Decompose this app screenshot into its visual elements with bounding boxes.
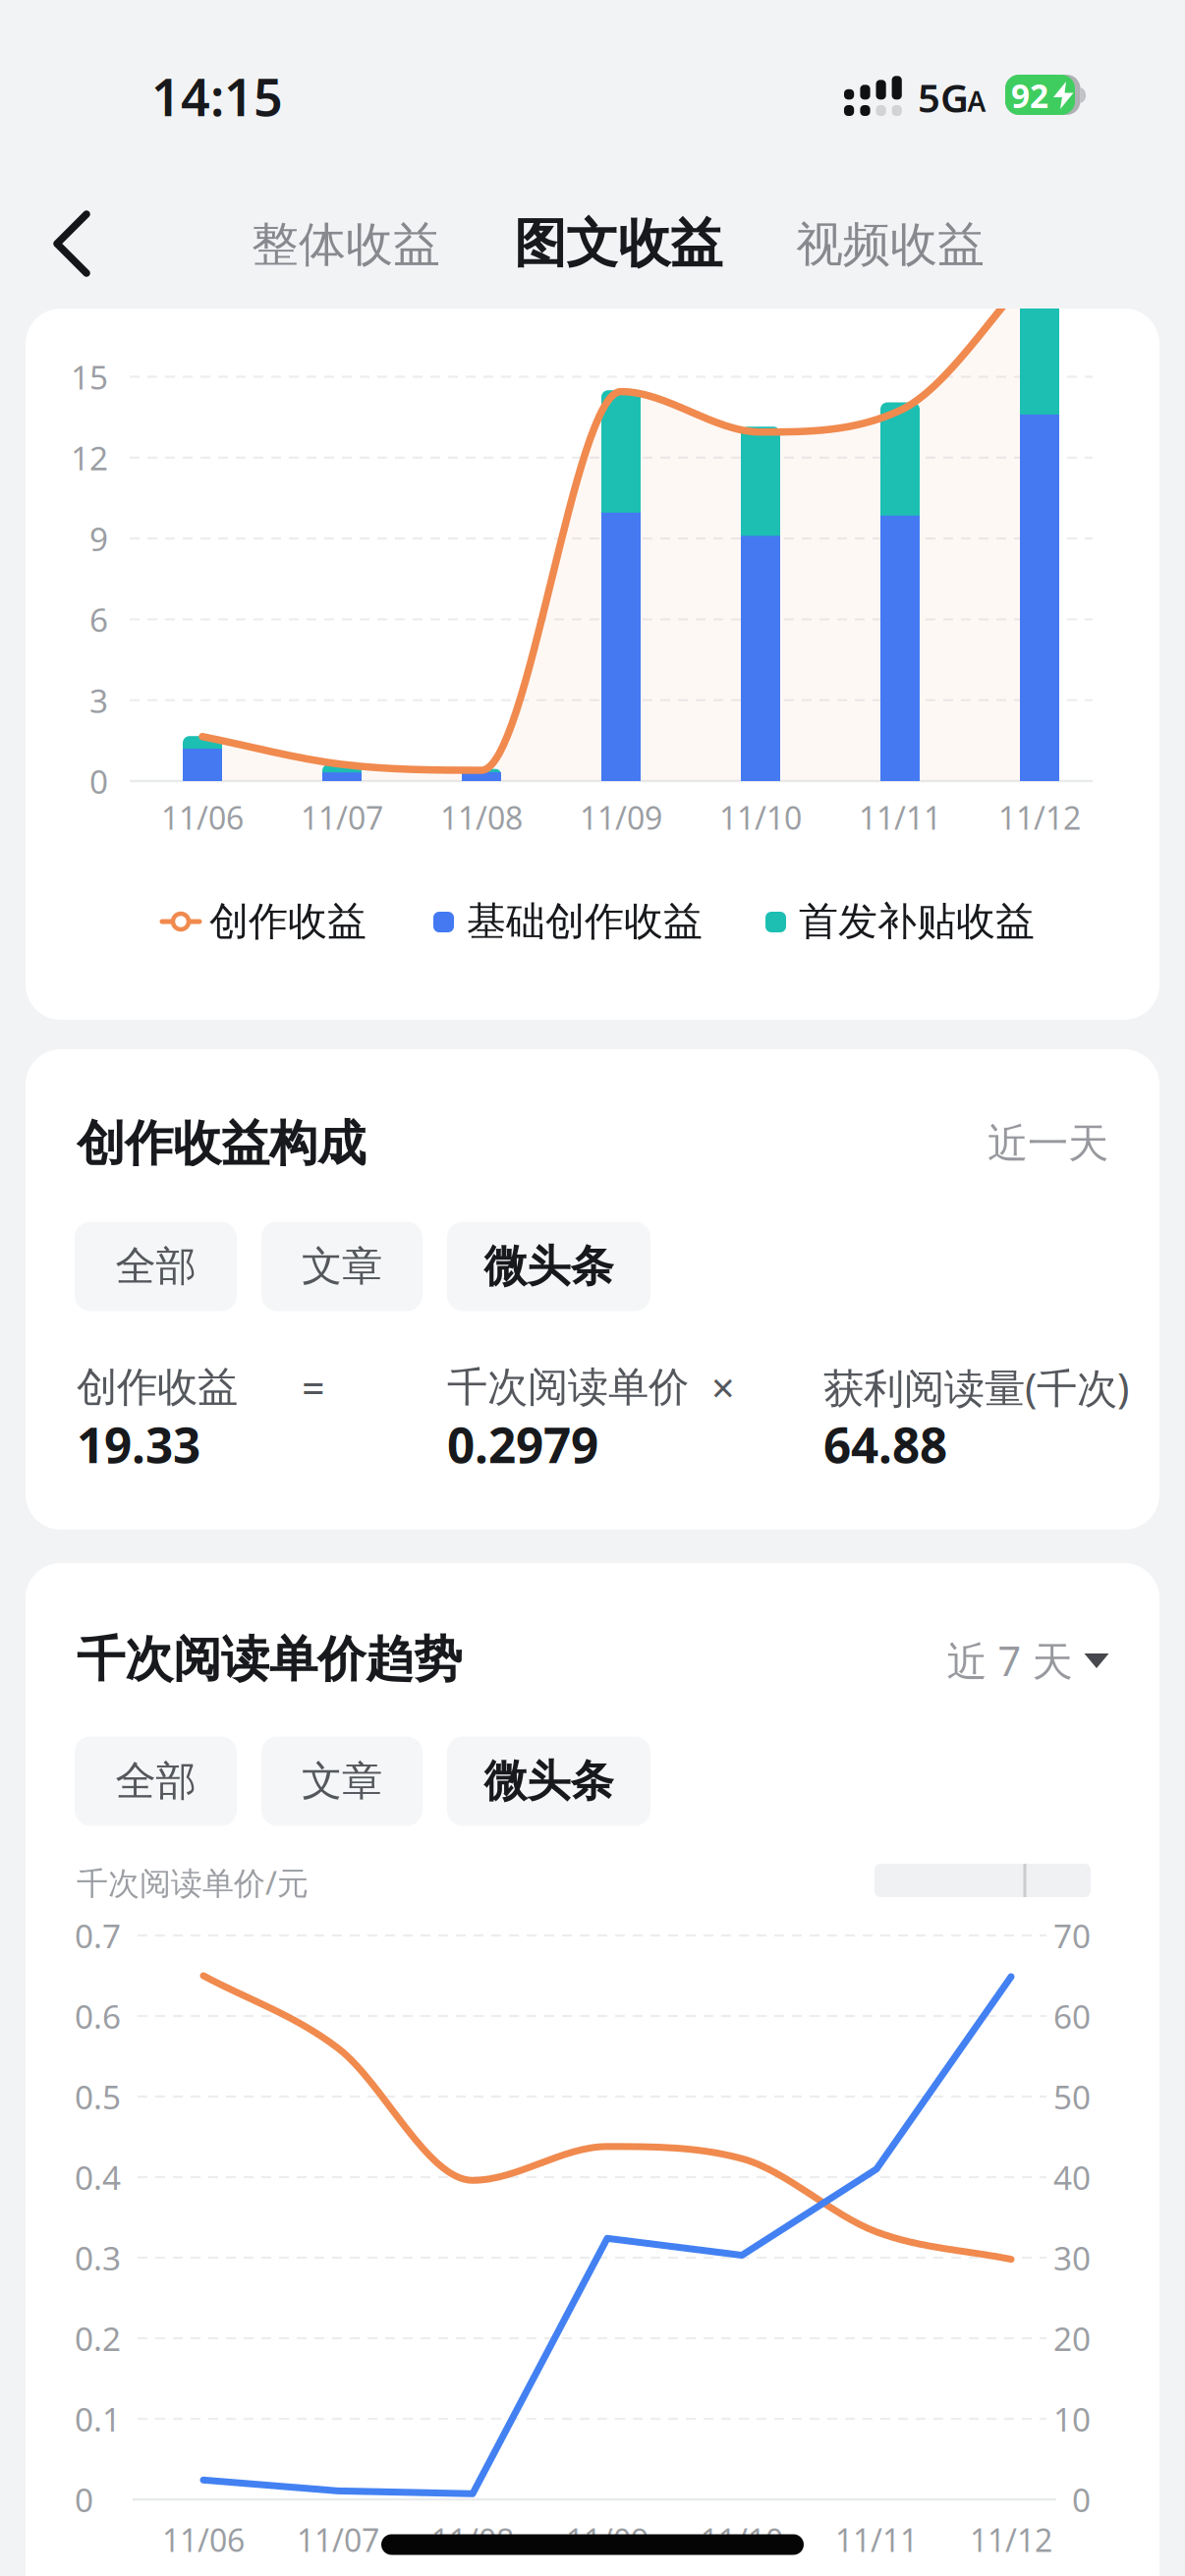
button[interactable]: 近 7 天	[947, 1633, 1109, 1687]
staticText: 千次阅读单价/元	[77, 1862, 309, 1903]
button[interactable]: 整体收益	[252, 216, 440, 274]
staticText: 整体收益	[252, 216, 440, 274]
staticText: 11/11	[835, 2519, 918, 2561]
staticText: 近一天	[987, 1119, 1108, 1169]
staticText: 千次阅读单价趋势	[77, 1630, 462, 1689]
staticText: 微头条	[484, 1240, 614, 1293]
button[interactable]: 文章	[261, 1736, 423, 1826]
staticText: 60	[1053, 1994, 1091, 2038]
staticText: 40	[1053, 2155, 1091, 2199]
staticText: 12	[71, 436, 108, 479]
staticText: 文章	[302, 1241, 382, 1291]
button[interactable]: 微头条	[447, 1736, 650, 1826]
staticText: 10	[1053, 2397, 1091, 2441]
staticText: 0.3	[75, 2236, 121, 2279]
staticText: 9	[89, 517, 108, 560]
staticText: 0.5	[75, 2075, 121, 2118]
staticText: 20	[1053, 2317, 1091, 2360]
staticText: 0.1	[75, 2397, 121, 2441]
staticText: 千次阅读单价	[447, 1362, 689, 1412]
staticText: 64.88	[823, 1412, 947, 1476]
staticText: 首发补贴收益	[799, 897, 1035, 946]
button[interactable]: 文章	[261, 1222, 423, 1311]
staticText: 0.4	[75, 2155, 121, 2199]
staticText: 11/08	[431, 2519, 514, 2561]
staticText: 视频收益	[796, 216, 985, 274]
staticText: 基础创作收益	[467, 897, 703, 946]
button[interactable]: 全部	[75, 1736, 237, 1826]
staticText: 创作收益	[209, 897, 367, 946]
button[interactable]: 图文收益	[514, 211, 722, 276]
staticText: 微头条	[484, 1755, 614, 1808]
staticText: 0.2979	[447, 1412, 598, 1476]
staticText: 获利阅读量(千次)	[823, 1360, 1129, 1414]
staticText: 创作收益	[77, 1362, 238, 1412]
button[interactable]: Back	[53, 211, 90, 276]
button[interactable]: 近一天	[814, 1119, 1108, 1169]
staticText: 图文收益	[514, 211, 722, 276]
staticText: 30	[1053, 2236, 1091, 2279]
staticText: 全部	[115, 1241, 196, 1291]
staticText: A	[967, 83, 986, 119]
staticText: 创作收益构成	[77, 1114, 366, 1173]
staticText: 5G	[918, 71, 969, 123]
staticText: 0	[75, 2478, 93, 2521]
staticText: 70	[1053, 1914, 1091, 1957]
staticText: 全部	[115, 1756, 196, 1806]
staticText: 0	[1072, 2478, 1091, 2521]
staticText: 6	[89, 598, 108, 641]
staticText: 0	[89, 759, 108, 803]
staticText: 11/09	[580, 797, 662, 838]
staticText: 11/11	[859, 797, 941, 838]
staticText: 15	[71, 355, 108, 399]
staticText: 11/10	[719, 797, 802, 838]
staticText: 11/06	[162, 2519, 245, 2561]
staticText: 11/06	[161, 797, 244, 838]
staticText: ×	[711, 1360, 735, 1414]
staticText: 11/09	[566, 2519, 649, 2561]
button[interactable]: 视频收益	[796, 216, 985, 274]
staticText: 11/12	[998, 797, 1081, 838]
staticText: 11/10	[701, 2519, 783, 2561]
staticText: 近 7 天	[947, 1633, 1072, 1687]
button[interactable]: 微头条	[447, 1222, 650, 1311]
staticText: 14:15	[151, 62, 283, 130]
staticText: 19.33	[77, 1412, 200, 1476]
staticText: 文章	[302, 1756, 382, 1806]
staticText: 3	[89, 678, 108, 722]
staticText: 11/07	[297, 2519, 379, 2561]
staticText: 50	[1053, 2075, 1091, 2118]
staticText: 11/07	[301, 797, 383, 838]
staticText: 0.7	[75, 1914, 121, 1957]
staticText: 92	[1011, 74, 1048, 117]
staticText: 11/08	[440, 797, 523, 838]
staticText: 0.6	[75, 1994, 121, 2038]
staticText: 11/12	[970, 2519, 1052, 2561]
button[interactable]: 全部	[75, 1222, 237, 1311]
staticText: 0.2	[75, 2317, 121, 2360]
staticText: =	[302, 1360, 325, 1414]
